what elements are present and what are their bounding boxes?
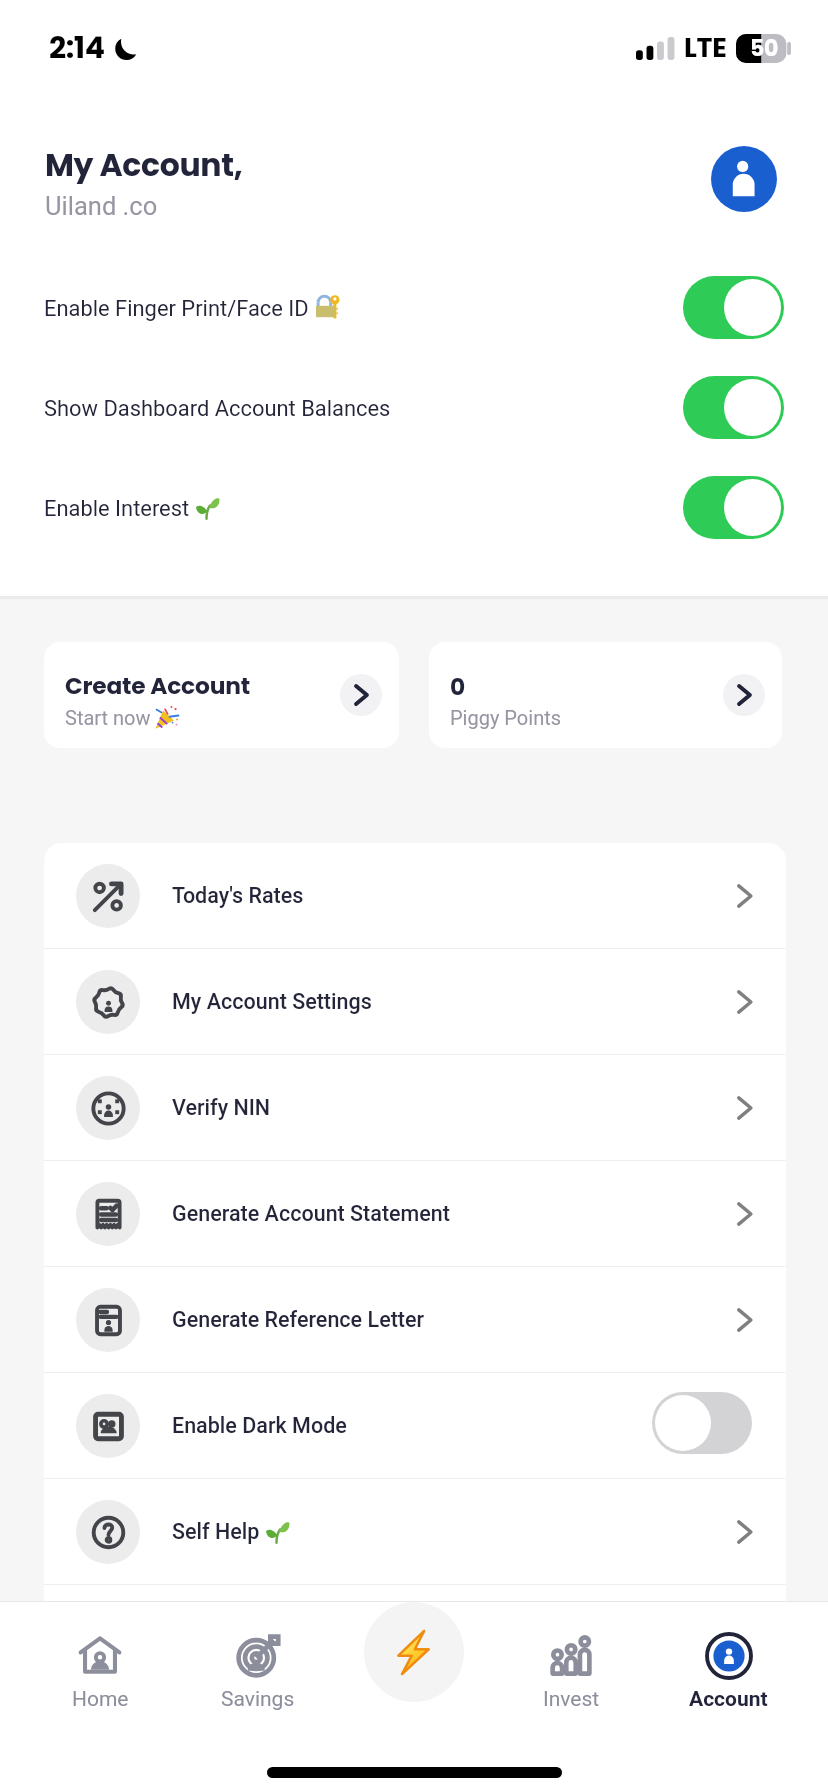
button[interactable]: Enable Finger Print/Face ID bbox=[0, 257, 828, 357]
staticText: Verify NIN bbox=[172, 1095, 271, 1120]
staticText: Account bbox=[689, 1687, 768, 1712]
button[interactable]: Show Dashboard Account Balances bbox=[0, 357, 828, 457]
staticText: Invest bbox=[543, 1687, 600, 1712]
button[interactable]: Enable Interest bbox=[0, 457, 828, 557]
staticText: Generate Account Statement bbox=[172, 1201, 450, 1226]
button[interactable]: Today's Rates bbox=[44, 843, 786, 948]
button[interactable]: Generate Account Statement bbox=[44, 1161, 786, 1266]
staticText: My Account Settings bbox=[172, 989, 372, 1014]
staticText: My Account, bbox=[45, 143, 243, 187]
staticText: Uiland .co bbox=[45, 191, 158, 221]
staticText: Savings bbox=[221, 1687, 295, 1712]
button[interactable] bbox=[683, 276, 784, 339]
button[interactable]: Account bbox=[650, 1602, 807, 1712]
staticText: Create Account bbox=[65, 670, 250, 703]
staticText: 0 bbox=[450, 671, 465, 704]
button[interactable]: Home bbox=[21, 1602, 179, 1712]
button[interactable]: Self Help bbox=[44, 1479, 786, 1584]
button[interactable]: Generate Reference Letter bbox=[44, 1267, 786, 1372]
button[interactable]: Savings bbox=[179, 1602, 336, 1712]
button[interactable]: Invest bbox=[493, 1602, 650, 1712]
button[interactable] bbox=[683, 376, 784, 439]
button[interactable] bbox=[652, 1392, 752, 1454]
button[interactable]: Enable Dark Mode bbox=[44, 1373, 786, 1478]
button[interactable]: Quick actions bbox=[364, 1602, 464, 1702]
staticText: Self Help bbox=[172, 1519, 260, 1544]
button[interactable]: My Account Settings bbox=[44, 949, 786, 1054]
staticText: Enable Interest bbox=[44, 496, 190, 522]
staticText: Show Dashboard Account Balances bbox=[44, 396, 391, 422]
staticText: Enable Finger Print/Face ID bbox=[44, 296, 309, 322]
staticText: Generate Reference Letter bbox=[172, 1307, 425, 1332]
staticText: Today's Rates bbox=[172, 883, 304, 908]
staticText: Home bbox=[72, 1687, 129, 1712]
staticText: 2:14 bbox=[49, 27, 105, 69]
button[interactable]: Profile bbox=[711, 146, 777, 212]
button[interactable]: 0 bbox=[429, 642, 782, 748]
button[interactable]: Verify NIN bbox=[44, 1055, 786, 1160]
staticText: Enable Dark Mode bbox=[172, 1413, 347, 1438]
staticText: Piggy Points bbox=[450, 706, 562, 729]
button[interactable]: Create Account bbox=[44, 642, 399, 748]
staticText: 50 bbox=[750, 33, 779, 64]
staticText: Start now bbox=[65, 706, 151, 729]
staticText: LTE bbox=[684, 29, 727, 67]
button[interactable] bbox=[683, 476, 784, 539]
